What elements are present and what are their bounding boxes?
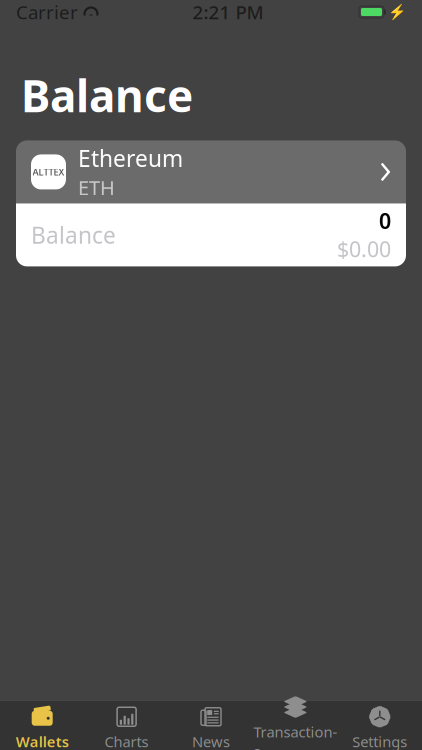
button[interactable]: ALTTEX — [0, 140, 422, 266]
staticText: Settings — [352, 732, 407, 750]
staticText: Carrier — [16, 0, 78, 24]
staticText: 0 — [379, 207, 391, 235]
button[interactable]: News — [169, 706, 253, 750]
staticText: $0.00 — [337, 235, 391, 263]
button[interactable]: Charts — [84, 706, 169, 750]
button[interactable]: Wallets — [0, 706, 84, 750]
staticText: Balance — [21, 66, 193, 124]
staticText: ALTTEX — [32, 166, 64, 178]
staticText: Ethereum — [78, 143, 183, 173]
button[interactable]: Settings — [338, 706, 422, 750]
button[interactable]: Transactions — [253, 706, 338, 750]
staticText: 2:21 PM — [192, 0, 263, 24]
staticText: ⚡ — [388, 4, 406, 20]
staticText: News — [192, 732, 230, 750]
staticText: Wallets — [16, 732, 69, 750]
staticText: Charts — [105, 732, 149, 750]
staticText: Balance — [31, 220, 116, 250]
staticText: ETH — [78, 174, 115, 201]
staticText: Transactions — [253, 722, 337, 750]
